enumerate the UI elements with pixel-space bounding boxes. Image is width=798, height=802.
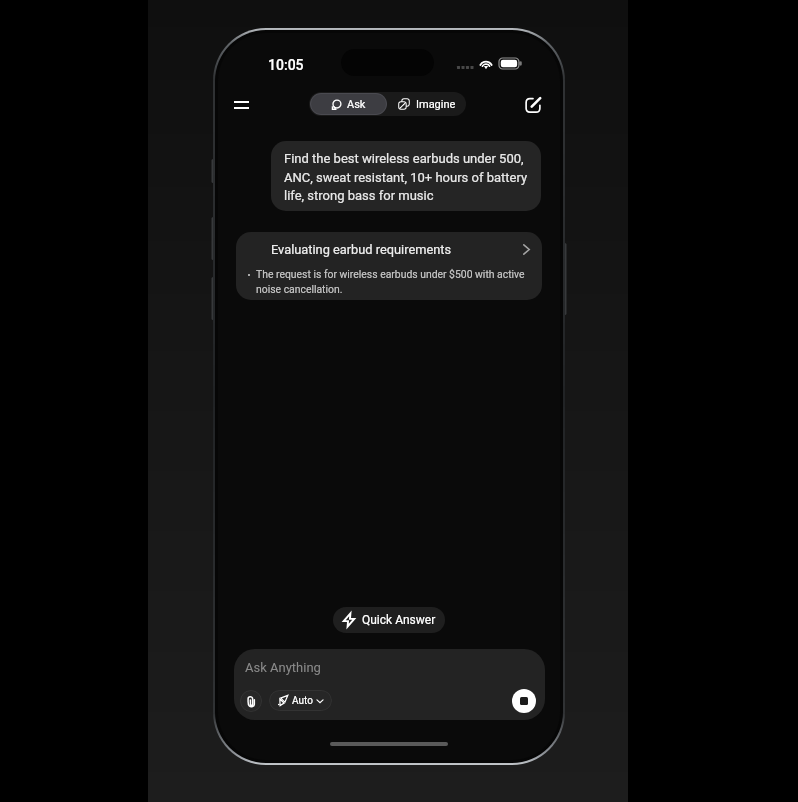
staticText: Quick Answer	[362, 613, 436, 627]
button[interactable]: Ask	[310, 93, 387, 115]
button[interactable]: Quick Answer	[333, 607, 445, 633]
button[interactable]: Attach file	[240, 690, 262, 712]
staticText: Find the best wireless earbuds under 500…	[284, 151, 529, 203]
button[interactable]: Find the best wireless earbuds under 500…	[271, 141, 541, 211]
button[interactable]: Auto	[269, 690, 332, 711]
button[interactable]: Imagine	[388, 92, 466, 116]
button[interactable]: Evaluating earbud requirements	[236, 232, 542, 300]
button[interactable]: New chat	[515, 88, 551, 122]
staticText: Ask Anything	[245, 660, 321, 675]
staticText: Ask	[347, 98, 366, 111]
staticText: 10:05	[268, 57, 304, 73]
staticText: Auto	[292, 695, 313, 707]
staticText: Imagine	[416, 98, 456, 111]
button[interactable]: Stop	[512, 689, 536, 713]
button[interactable]: Menu	[223, 88, 259, 122]
staticText: Evaluating earbud requirements	[271, 242, 452, 257]
staticText: The request is for wireless earbuds unde…	[256, 268, 538, 295]
